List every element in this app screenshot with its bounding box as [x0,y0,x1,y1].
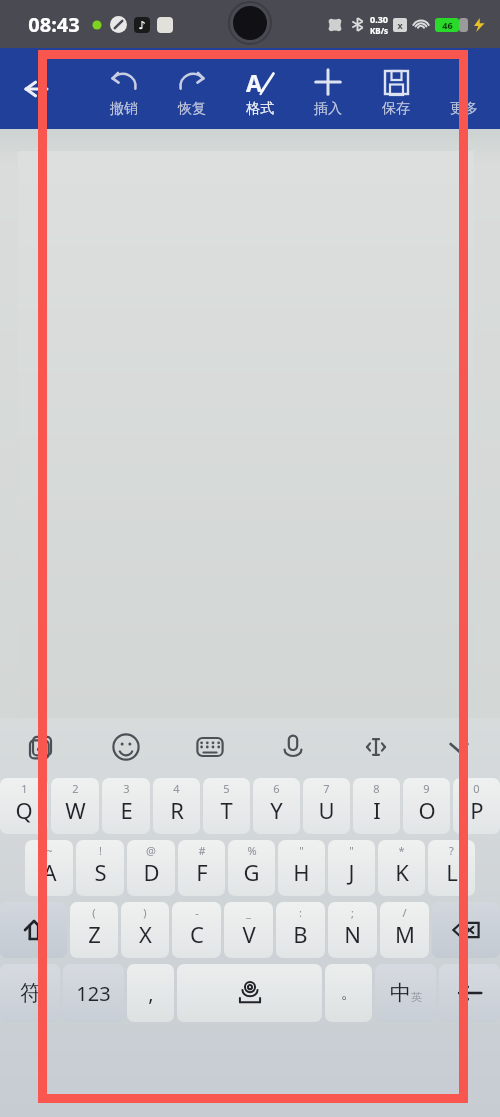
button[interactable]: ) [121,902,169,958]
staticText: 符 [20,980,41,1006]
staticText: B [293,919,308,949]
button[interactable]: 6 [253,778,300,834]
staticText: 0.30 [370,13,388,25]
button[interactable]: % [228,840,275,896]
button[interactable]: Backspace [432,902,500,958]
staticText: @ [146,843,156,858]
button[interactable]: 保存 [362,64,430,120]
staticText: 保存 [382,100,410,118]
button[interactable]: ( [70,902,118,958]
button[interactable]: 插入 [294,64,362,120]
staticText: F [196,857,208,887]
staticText: 0 [473,781,480,796]
button[interactable]: 更多 [430,64,498,120]
button[interactable]: , [127,964,174,1022]
button[interactable]: : [276,902,325,958]
button[interactable]: 符 [0,964,60,1022]
button[interactable]: 1 [0,778,48,834]
staticText: 123 [76,980,111,1007]
staticText: ! [99,843,102,858]
staticText: Z [88,919,101,949]
staticText: # [198,843,206,858]
button[interactable]: 5 [203,778,250,834]
staticText: x [397,19,403,31]
staticText: K [395,857,409,887]
staticText: N [344,919,361,949]
button[interactable]: _ [224,902,273,958]
staticText: Y [270,795,283,825]
staticText: 7 [323,781,330,796]
button[interactable]: ; [328,902,377,958]
button[interactable]: - [172,902,221,958]
button[interactable]: 0 [453,778,500,834]
staticText: 2 [72,781,79,796]
button[interactable]: ? [428,840,475,896]
staticText: ; [351,905,354,920]
staticText: G [243,857,260,887]
button[interactable]: Space / voice input [177,964,322,1022]
button[interactable]: 中 [375,964,436,1022]
button[interactable]: 123 [63,964,124,1022]
staticText: " [349,843,354,858]
button[interactable]: 4 [153,778,200,834]
staticText: A [246,67,262,97]
button[interactable]: A [226,64,294,120]
staticText: : [299,905,302,920]
button[interactable]: 撤销 [90,64,158,120]
staticText: I [373,795,381,825]
staticText: T [220,795,233,825]
staticText: 5 [223,781,230,796]
staticText: 插入 [314,100,342,118]
staticText: 撤销 [110,100,138,118]
staticText: 更多 [450,100,478,118]
staticText: ) [143,905,147,920]
staticText: 。 [341,983,357,1003]
button[interactable]: 8 [353,778,400,834]
staticText: 08:43 [28,11,80,38]
staticText: ♪ [138,19,146,32]
button[interactable]: 恢复 [158,64,226,120]
staticText: 6 [273,781,280,796]
staticText: J [348,857,355,887]
button[interactable]: 2 [51,778,99,834]
staticText: P [470,795,484,825]
button[interactable]: Cursor [334,718,417,775]
button[interactable]: Enter [439,964,500,1022]
button[interactable]: 7 [303,778,350,834]
staticText: M [395,919,415,949]
staticText: D [143,857,160,887]
button[interactable]: * [378,840,425,896]
button[interactable]: " [328,840,375,896]
button[interactable]: ~ [25,840,73,896]
staticText: R [170,795,184,825]
staticText: ( [92,905,96,920]
button[interactable]: Stickers [0,718,84,775]
staticText: 3 [123,781,130,796]
staticText: L [446,857,458,887]
button[interactable]: Voice input [251,718,334,775]
button[interactable]: 9 [403,778,450,834]
staticText: , [148,980,154,1007]
button[interactable]: / [380,902,429,958]
staticText: Q [15,795,33,825]
staticText: 英 [411,990,422,1004]
button[interactable]: " [278,840,325,896]
button[interactable]: Back [14,67,58,111]
staticText: C [190,919,204,949]
button[interactable]: @ [127,840,175,896]
button[interactable]: 。 [325,964,372,1022]
staticText: _ [246,905,251,920]
staticText: V [242,919,256,949]
staticText: 格式 [246,100,274,118]
button[interactable]: Hide keyboard [417,718,500,775]
staticText: KB/s [370,25,388,36]
staticText: * [398,843,405,858]
button[interactable]: Emoji [84,718,168,775]
button[interactable]: # [178,840,225,896]
button[interactable]: ! [76,840,124,896]
staticText: 46 [442,19,453,31]
staticText: S [94,857,107,887]
button[interactable]: 3 [102,778,150,834]
button[interactable]: Keyboard layout [168,718,251,775]
button[interactable]: Shift [0,902,67,958]
